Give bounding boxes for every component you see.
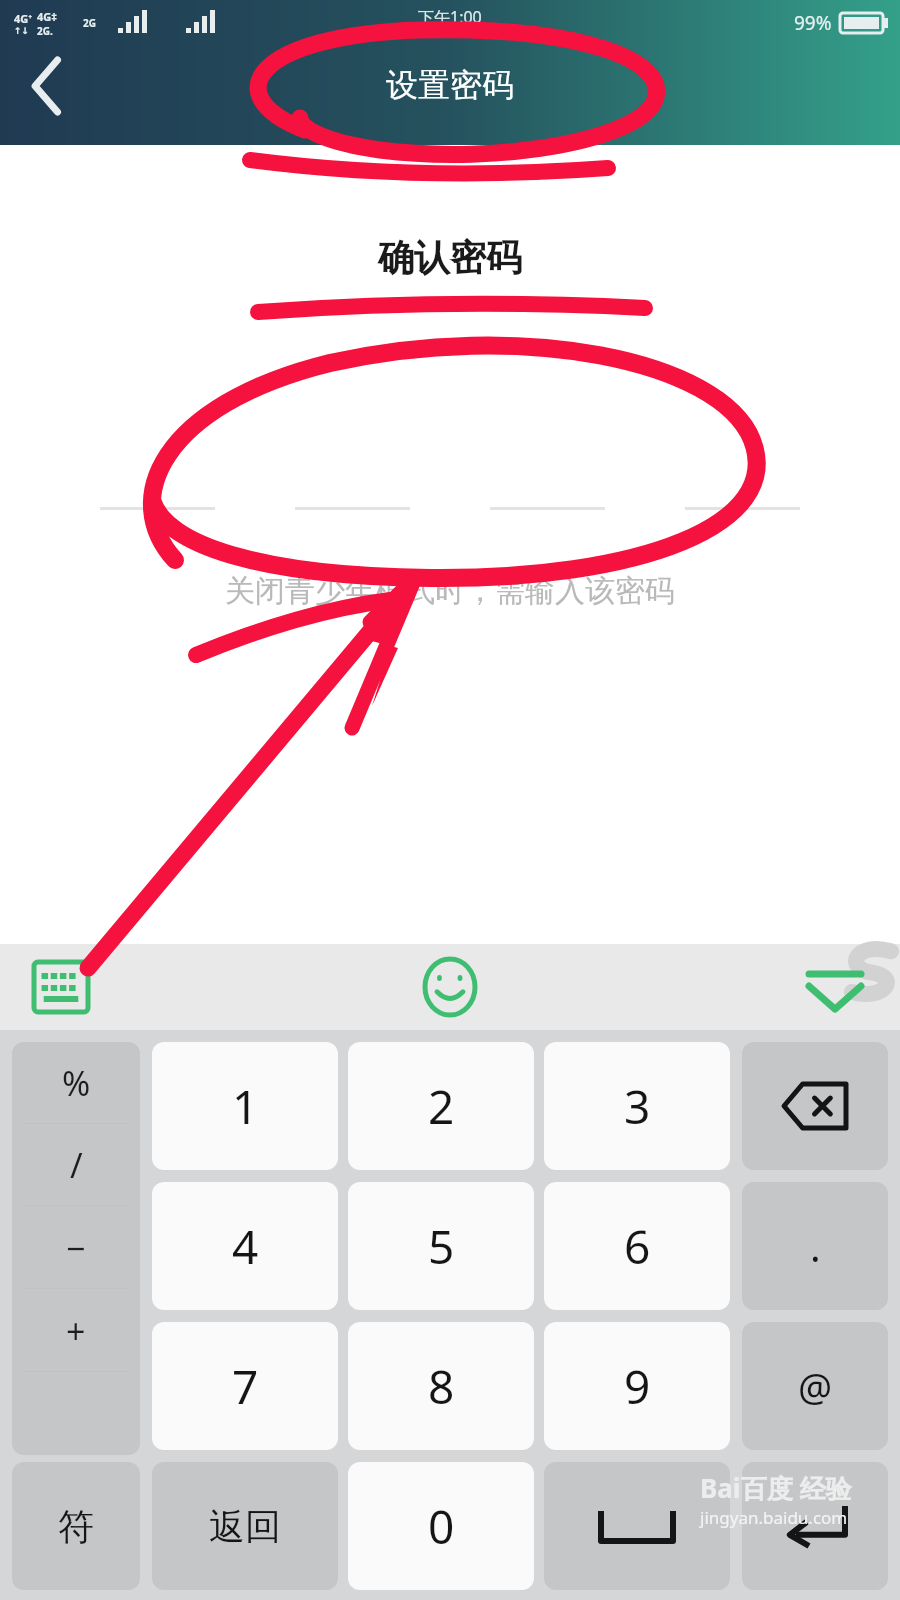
button[interactable]: Switch keyboard	[18, 944, 104, 1030]
staticText: −	[66, 1225, 86, 1271]
button[interactable]: .	[742, 1182, 888, 1310]
staticText: 1	[232, 1075, 259, 1138]
button[interactable]: @	[742, 1322, 888, 1450]
staticText: jingyan.baidu.com	[700, 1506, 848, 1529]
staticText: 4G‡	[37, 9, 57, 24]
staticText: 下午1:00	[418, 6, 482, 28]
staticText: 4G⁺	[14, 11, 33, 26]
staticText: ↑↓	[14, 26, 30, 36]
button[interactable]: Emoji	[407, 944, 493, 1030]
button[interactable]: 4	[152, 1182, 338, 1310]
staticText: 设置密码	[386, 65, 514, 105]
staticText: 确认密码	[378, 235, 522, 280]
staticText: 返回	[209, 1504, 281, 1549]
button[interactable]: %	[12, 1042, 140, 1124]
button[interactable]: 符	[12, 1462, 140, 1590]
button[interactable]: 0	[348, 1462, 534, 1590]
button[interactable]: Backspace	[742, 1042, 888, 1170]
staticText: +	[66, 1308, 86, 1354]
button[interactable]: −	[12, 1206, 140, 1289]
button[interactable]	[295, 430, 410, 510]
button[interactable]	[100, 430, 215, 510]
staticText: 2	[428, 1075, 455, 1138]
button[interactable]: +	[12, 1289, 140, 1372]
button[interactable]: 2	[348, 1042, 534, 1170]
staticText: 5	[428, 1215, 455, 1278]
staticText: Bai百度 经验	[700, 1470, 852, 1506]
staticText: @	[798, 1360, 833, 1412]
button[interactable]: 9	[544, 1322, 730, 1450]
staticText: .	[810, 1219, 821, 1273]
staticText: 符	[58, 1504, 94, 1549]
staticText: 9	[624, 1355, 651, 1418]
staticText: 0	[428, 1495, 455, 1558]
staticText: 8	[428, 1355, 455, 1418]
button[interactable]: 1	[152, 1042, 338, 1170]
staticText: 2G.	[37, 24, 53, 38]
button[interactable]: 7	[152, 1322, 338, 1450]
staticText: /	[70, 1142, 83, 1188]
button[interactable]: Space	[544, 1462, 730, 1590]
button[interactable]	[685, 430, 800, 510]
button[interactable]: 5	[348, 1182, 534, 1310]
staticText: 4	[232, 1215, 259, 1278]
button[interactable]: 8	[348, 1322, 534, 1450]
staticText: %	[62, 1060, 91, 1106]
staticText: 关闭青少年模式时，需输入该密码	[225, 572, 675, 610]
staticText: 99%	[794, 10, 832, 36]
button[interactable]: Hide keyboard	[792, 944, 878, 1030]
staticText: 7	[232, 1355, 259, 1418]
staticText: 6	[624, 1215, 651, 1278]
button[interactable]: Enter	[742, 1462, 888, 1590]
button[interactable]: 返回	[152, 1462, 338, 1590]
staticText: 3	[624, 1075, 651, 1138]
button[interactable]: 3	[544, 1042, 730, 1170]
button[interactable]: Back	[0, 38, 96, 134]
button[interactable]: 6	[544, 1182, 730, 1310]
staticText: 2G	[83, 16, 96, 30]
button[interactable]: /	[12, 1124, 140, 1206]
button[interactable]	[490, 430, 605, 510]
